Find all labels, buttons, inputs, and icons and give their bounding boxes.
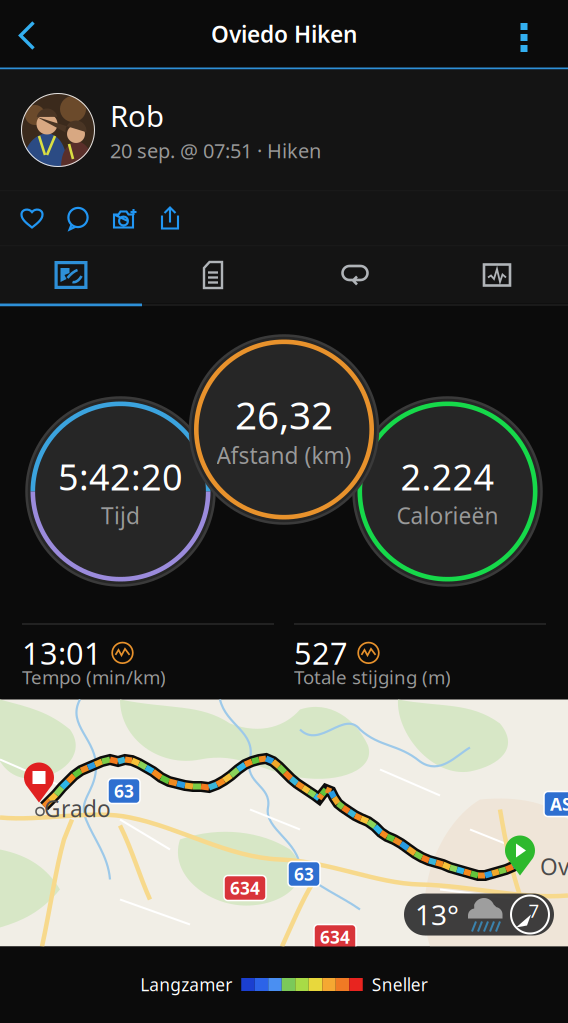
button[interactable]: Laps <box>284 246 426 303</box>
staticText: 26,32 <box>235 389 333 440</box>
button[interactable]: Add photo <box>102 191 148 245</box>
staticText: 13° <box>415 896 459 933</box>
button[interactable]: Charts <box>426 246 568 303</box>
staticText: Langzamer <box>140 973 232 996</box>
staticText: 634 <box>230 876 260 899</box>
button[interactable]: Like <box>10 191 56 245</box>
button[interactable]: More options <box>480 0 568 67</box>
button[interactable]: Share <box>148 191 194 245</box>
staticText: 7 <box>528 898 539 923</box>
staticText: Tijd <box>101 500 140 530</box>
staticText: Oviedo Hiken <box>211 19 357 49</box>
staticText: 63 <box>294 862 314 885</box>
staticText: 2.224 <box>400 452 494 500</box>
staticText: Sneller <box>372 973 428 996</box>
button[interactable]: Back <box>0 0 54 67</box>
staticText: Calorieën <box>396 500 498 530</box>
staticText: AS <box>550 792 568 815</box>
staticText: Ov <box>540 851 568 882</box>
staticText: 527 <box>294 632 348 673</box>
button[interactable]: Comment <box>56 191 102 245</box>
staticText: 634 <box>320 925 350 948</box>
button[interactable]: Details <box>142 246 284 303</box>
staticText: Grado <box>44 793 111 824</box>
staticText: 13:01 <box>22 632 102 673</box>
staticText: Afstand (km) <box>216 440 351 470</box>
staticText: 63 <box>114 779 134 802</box>
staticText: Totale stijging (m) <box>294 664 451 689</box>
staticText: Tempo (min/km) <box>22 664 166 689</box>
staticText: 20 sep. @ 07:51 · Hiken <box>110 137 321 164</box>
staticText: Rob <box>110 96 164 135</box>
button[interactable]: Map <box>0 246 142 303</box>
staticText: 5:42:20 <box>58 452 183 500</box>
